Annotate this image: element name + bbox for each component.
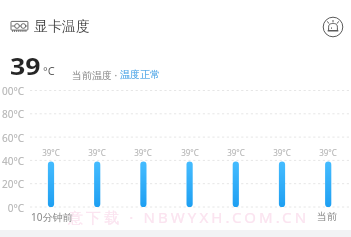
staticText: 10分钟前 xyxy=(31,210,73,224)
staticText: 意下载 · NBWYXH.COM.CN xyxy=(68,207,310,227)
staticText: 显卡温度 xyxy=(34,18,90,36)
staticText: 39°C xyxy=(267,147,297,158)
staticText: 39°C xyxy=(128,147,158,158)
staticText: 60°C xyxy=(0,131,24,145)
staticText: 80°C xyxy=(0,107,24,121)
staticText: 0°C xyxy=(0,201,24,215)
staticText: 39°C xyxy=(221,147,251,158)
staticText: 39°C xyxy=(175,147,205,158)
staticText: °C xyxy=(43,63,55,78)
staticText: 20°C xyxy=(0,177,24,191)
staticText: 39°C xyxy=(36,147,66,158)
staticText: 39°C xyxy=(82,147,112,158)
staticText: 当前温度 · xyxy=(72,68,120,82)
staticText: 40°C xyxy=(0,154,24,168)
staticText: 当前 xyxy=(317,210,337,223)
staticText: 39°C xyxy=(313,147,343,158)
staticText: 温度正常 xyxy=(120,68,160,81)
staticText: 100°C xyxy=(0,84,24,98)
staticText: 39 xyxy=(10,50,41,81)
button[interactable]: Temperature alarm settings xyxy=(320,14,346,40)
